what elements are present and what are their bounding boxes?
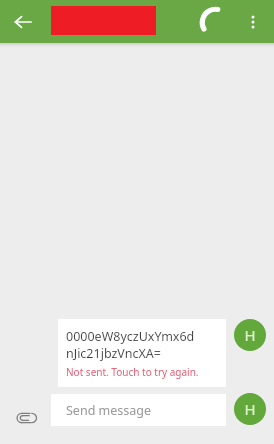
button[interactable]: Back [6, 5, 40, 39]
button[interactable]: Call [198, 5, 232, 39]
staticText: H [244, 325, 256, 345]
staticText: H [244, 399, 256, 419]
button[interactable]: Contact avatar [234, 393, 266, 425]
button[interactable]: Attach [8, 401, 42, 435]
staticText: Send message [66, 402, 152, 419]
button[interactable]: More options [236, 5, 270, 39]
button[interactable]: Contact avatar [234, 319, 266, 351]
staticText: nJic21jbzVncXA= [66, 345, 161, 362]
staticText: 0000eW8yczUxYmx6d [66, 328, 195, 345]
button[interactable]: Send message [51, 394, 226, 426]
button[interactable]: 0000eW8yczUxYmx6d [58, 319, 226, 387]
staticText: Not sent. Touch to try again. [66, 365, 199, 379]
